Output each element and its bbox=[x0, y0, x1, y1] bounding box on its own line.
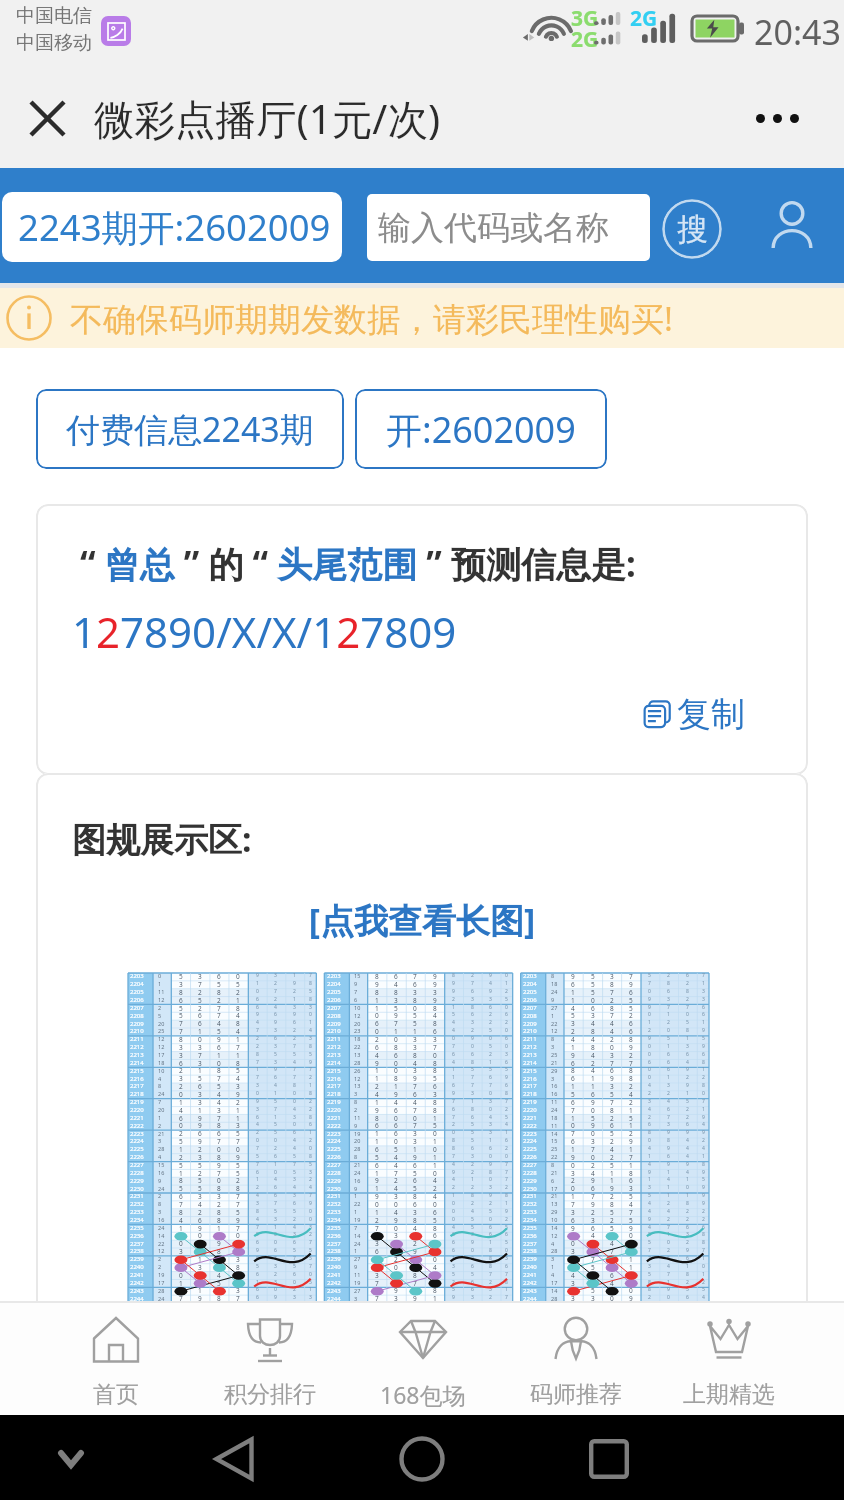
staticText: 2227 bbox=[523, 1161, 537, 1169]
staticText: 3 bbox=[394, 1294, 398, 1301]
staticText: 3 bbox=[571, 1208, 575, 1217]
staticText: 7 bbox=[293, 1043, 296, 1050]
staticText: 2230 bbox=[327, 1185, 341, 1193]
staticText: 1 bbox=[217, 1224, 221, 1233]
staticText: 3 bbox=[198, 1098, 202, 1107]
staticText: 2218 bbox=[327, 1090, 341, 1098]
staticText: 0 bbox=[667, 1027, 670, 1034]
staticText: 5 bbox=[571, 1090, 575, 1099]
staticText: 2 bbox=[198, 1208, 202, 1217]
button[interactable]: 168包场 bbox=[346, 1303, 499, 1415]
button[interactable]: Close bbox=[11, 68, 83, 168]
staticText: 7 bbox=[629, 972, 633, 981]
staticText: 3 bbox=[217, 1106, 221, 1115]
staticText: 2241 bbox=[523, 1271, 537, 1279]
button[interactable]: 2243期开:2602009 bbox=[2, 192, 342, 262]
staticText: 2244 bbox=[327, 1295, 341, 1301]
staticText: 1 bbox=[452, 1066, 455, 1073]
staticText: 7 bbox=[309, 1066, 312, 1073]
staticText: 0 bbox=[309, 1011, 312, 1018]
staticText: 21 bbox=[158, 1130, 165, 1137]
staticText: 6 bbox=[702, 1011, 705, 1018]
button[interactable]: [点我查看长图] bbox=[36, 897, 808, 943]
button[interactable]: 积分排行 bbox=[193, 1303, 346, 1415]
staticText: 9 bbox=[505, 1074, 508, 1081]
staticText: 0 bbox=[433, 1051, 437, 1060]
staticText: 5 bbox=[433, 1247, 437, 1256]
staticText: 9 bbox=[648, 1004, 651, 1011]
staticText: 2218 bbox=[523, 1090, 537, 1098]
staticText: 0 bbox=[489, 1090, 492, 1097]
button[interactable]: 复制 bbox=[642, 693, 745, 736]
staticText: 2205 bbox=[327, 988, 341, 996]
button[interactable]: 搜 bbox=[662, 199, 722, 259]
staticText: 4 bbox=[686, 1145, 689, 1152]
staticText: 6 bbox=[394, 1129, 398, 1138]
button[interactable]: Account bbox=[762, 194, 822, 254]
staticText: 2 bbox=[309, 1231, 312, 1238]
staticText: 8 bbox=[433, 1098, 437, 1107]
staticText: 6 bbox=[571, 1137, 575, 1146]
staticText: 4 bbox=[629, 1279, 633, 1288]
button[interactable]: 首页 bbox=[39, 1303, 193, 1415]
staticText: 8 bbox=[702, 1059, 705, 1066]
staticText: 3 bbox=[158, 1137, 162, 1144]
staticText: 2 bbox=[198, 988, 202, 997]
button[interactable]: Recent apps bbox=[572, 1422, 646, 1496]
staticText: 9 bbox=[591, 1200, 595, 1209]
staticText: 5 bbox=[591, 1114, 595, 1123]
staticText: 0 bbox=[394, 1137, 398, 1146]
staticText: 8 bbox=[433, 1059, 437, 1068]
button[interactable]: Home bbox=[385, 1422, 459, 1496]
staticText: 3 bbox=[610, 1082, 614, 1091]
staticText: 5 bbox=[198, 996, 202, 1005]
staticText: 0 bbox=[433, 1129, 437, 1138]
staticText: 3 bbox=[648, 1184, 651, 1191]
button[interactable]: 码师推荐 bbox=[499, 1303, 652, 1415]
staticText: 3 bbox=[471, 1153, 474, 1160]
button[interactable]: More options bbox=[722, 68, 832, 168]
staticText: 6 bbox=[274, 1035, 277, 1042]
staticText: 1 bbox=[256, 1066, 259, 1073]
staticText: 9 bbox=[394, 1286, 398, 1295]
staticText: 9 bbox=[256, 972, 259, 979]
staticText: 3 bbox=[375, 1239, 379, 1248]
staticText: 4 bbox=[686, 1153, 689, 1160]
staticText: 5 bbox=[413, 1169, 417, 1178]
staticText: 2 bbox=[629, 1051, 633, 1060]
staticText: 1 bbox=[309, 1019, 312, 1026]
staticText: 2203 bbox=[130, 972, 144, 980]
staticText: 28 bbox=[551, 1295, 558, 1301]
button[interactable]: 开:2602009 bbox=[355, 389, 607, 469]
staticText: 0 bbox=[274, 1239, 277, 1246]
staticText: 2217 bbox=[130, 1082, 144, 1090]
staticText: 5 bbox=[471, 1121, 474, 1128]
button[interactable]: 上期精选 bbox=[652, 1303, 805, 1415]
staticText: 7 bbox=[256, 1161, 259, 1168]
staticText: 6 bbox=[433, 1208, 437, 1217]
staticText: 2 bbox=[413, 1239, 417, 1248]
button[interactable]: 输入代码或名称 bbox=[367, 194, 650, 261]
staticText: 1 bbox=[309, 1082, 312, 1089]
staticText: 5 bbox=[413, 1184, 417, 1193]
staticText: 7 bbox=[179, 1027, 183, 1036]
staticText: 3 bbox=[551, 1075, 555, 1082]
staticText: 18 bbox=[354, 1035, 361, 1042]
staticText: 1 bbox=[667, 1169, 670, 1176]
staticText: 29 bbox=[551, 1208, 558, 1215]
staticText: 8 bbox=[236, 1184, 240, 1193]
button[interactable]: 付费信息2243期 bbox=[36, 389, 344, 469]
staticText: 0 bbox=[648, 1074, 651, 1081]
staticText: 1 bbox=[293, 972, 296, 979]
staticText: 9 bbox=[198, 1121, 202, 1130]
button[interactable]: Hide keyboard bbox=[34, 1422, 108, 1496]
staticText: 6 bbox=[571, 1216, 575, 1225]
staticText: 2235 bbox=[327, 1224, 341, 1232]
staticText: 0 bbox=[452, 1035, 455, 1042]
button[interactable]: Back bbox=[197, 1422, 271, 1496]
staticText: 9 bbox=[702, 1027, 705, 1034]
staticText: 3 bbox=[413, 1137, 417, 1146]
staticText: 6 bbox=[667, 1066, 670, 1073]
staticText: 3 bbox=[293, 1192, 296, 1199]
staticText: 3 bbox=[198, 1192, 202, 1201]
